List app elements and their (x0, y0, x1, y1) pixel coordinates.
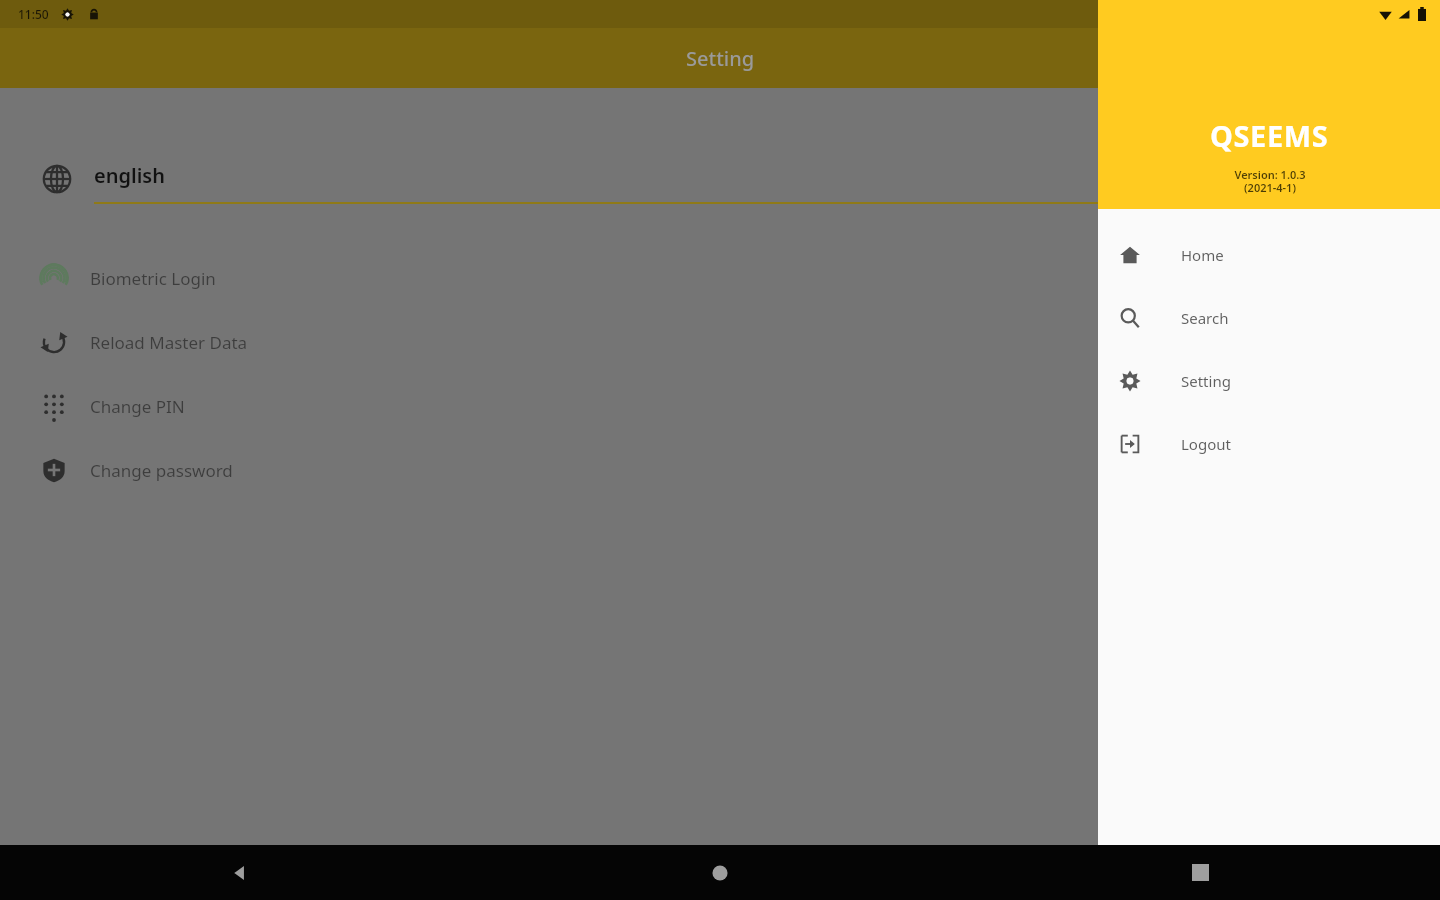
staticText: 11:50 (18, 6, 49, 22)
button[interactable]: Recent apps (960, 845, 1440, 900)
staticText: Search (1181, 308, 1229, 328)
button[interactable]: Change password (0, 438, 1440, 502)
button[interactable]: Home (1098, 223, 1440, 286)
button[interactable]: Back (0, 845, 480, 900)
button[interactable]: Logout (1098, 412, 1440, 475)
staticText: english (94, 162, 165, 189)
staticText: Change PIN (90, 395, 185, 418)
button[interactable]: Setting (1098, 349, 1440, 412)
staticText: Biometric Login (90, 267, 216, 290)
button[interactable]: Change PIN (0, 374, 1440, 438)
staticText: Logout (1181, 434, 1231, 454)
button[interactable]: Reload Master Data (0, 310, 1440, 374)
button[interactable]: english (0, 148, 1440, 210)
staticText: Home (1181, 245, 1224, 265)
button[interactable]: Home (480, 845, 960, 900)
staticText: Change password (90, 459, 233, 482)
button[interactable]: Search (1098, 286, 1440, 349)
staticText: QSEEMS (1210, 116, 1329, 155)
staticText: Setting (686, 45, 755, 72)
button[interactable]: Biometric Login (0, 246, 1440, 310)
staticText: Setting (1181, 371, 1231, 391)
staticText: Version: 1.0.3 (2021-4-1) (1234, 167, 1306, 195)
staticText: Reload Master Data (90, 331, 248, 354)
